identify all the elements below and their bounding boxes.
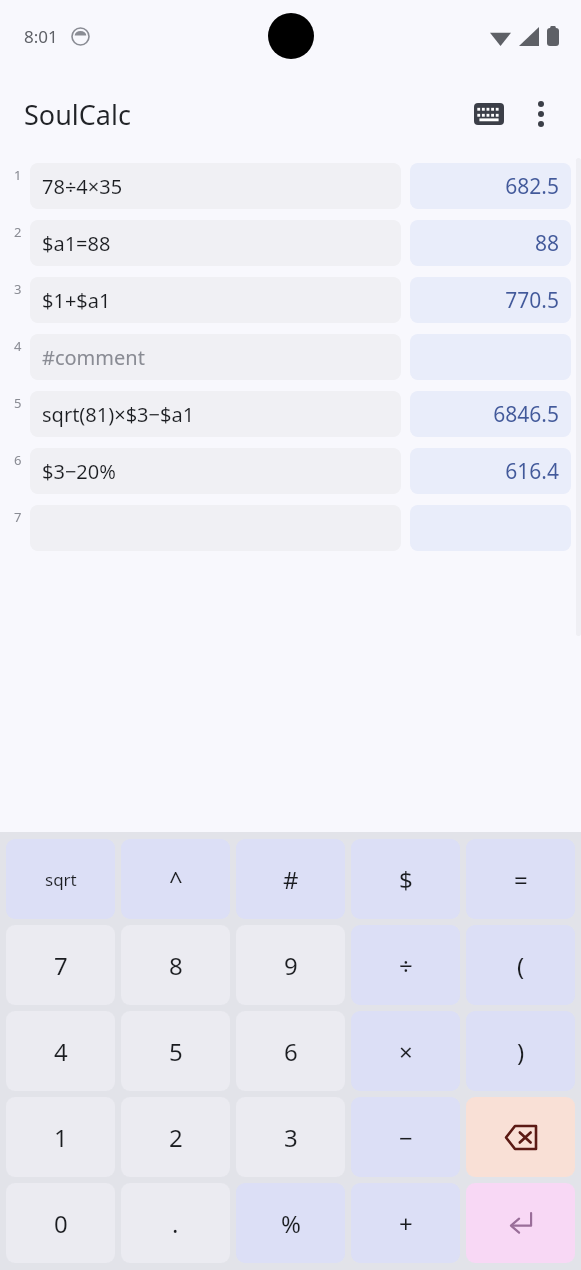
staticText: 1	[14, 166, 22, 184]
staticText: 7	[14, 508, 22, 526]
staticText: 8	[169, 949, 183, 982]
button[interactable]: More options	[515, 88, 567, 140]
button[interactable]: =	[466, 839, 575, 919]
button[interactable]: 4	[0, 334, 581, 380]
staticText: (	[517, 949, 525, 982]
staticText: %	[281, 1207, 301, 1240]
button[interactable]: 4	[6, 1011, 115, 1091]
staticText: 88	[534, 229, 559, 258]
staticText: $3−20%	[42, 458, 116, 485]
button[interactable]: Keyboard	[463, 88, 515, 140]
staticText: $a1=88	[42, 230, 111, 257]
staticText: ×	[399, 1035, 413, 1068]
button[interactable]: 1	[0, 163, 581, 209]
button[interactable]: .	[121, 1183, 230, 1263]
button[interactable]: 1	[6, 1097, 115, 1177]
button[interactable]: 7	[0, 505, 581, 551]
button[interactable]: #	[236, 839, 345, 919]
staticText: 0	[54, 1207, 68, 1240]
staticText: sqrt(81)×$3−$a1	[42, 401, 195, 428]
button[interactable]: 6	[236, 1011, 345, 1091]
staticText: 8:01	[24, 25, 58, 48]
staticText: 682.5	[505, 172, 559, 201]
button[interactable]: 3	[0, 277, 581, 323]
staticText: #comment	[42, 344, 145, 371]
button[interactable]: 0	[6, 1183, 115, 1263]
button[interactable]: %	[236, 1183, 345, 1263]
staticText: $	[399, 863, 413, 896]
staticText: +	[399, 1207, 413, 1240]
staticText: ÷	[399, 949, 413, 982]
button[interactable]: Backspace	[466, 1097, 575, 1177]
staticText: 2	[169, 1121, 183, 1154]
staticText: 9	[284, 949, 298, 982]
staticText: ^	[169, 863, 183, 896]
staticText: −	[399, 1121, 413, 1154]
button[interactable]: 6	[0, 448, 581, 494]
staticText: .	[172, 1207, 179, 1240]
staticText: 616.4	[505, 457, 559, 486]
button[interactable]: +	[351, 1183, 460, 1263]
button[interactable]: −	[351, 1097, 460, 1177]
button[interactable]: ×	[351, 1011, 460, 1091]
button[interactable]: 5	[0, 391, 581, 437]
button[interactable]: ^	[121, 839, 230, 919]
button[interactable]: sqrt	[6, 839, 115, 919]
button[interactable]: 2	[0, 220, 581, 266]
button[interactable]: )	[466, 1011, 575, 1091]
staticText: 6846.5	[493, 400, 559, 429]
button[interactable]: $	[351, 839, 460, 919]
staticText: $1+$a1	[42, 287, 111, 314]
staticText: 6	[14, 451, 22, 469]
button[interactable]: 8	[121, 925, 230, 1005]
staticText: 5	[169, 1035, 183, 1068]
staticText: =	[514, 863, 528, 896]
staticText: 4	[54, 1035, 68, 1068]
staticText: #	[283, 863, 299, 896]
staticText: 5	[14, 394, 22, 412]
button[interactable]: 9	[236, 925, 345, 1005]
staticText: SoulCalc	[24, 96, 131, 133]
staticText: 6	[284, 1035, 298, 1068]
staticText: )	[517, 1035, 525, 1068]
button[interactable]: 3	[236, 1097, 345, 1177]
button[interactable]: 5	[121, 1011, 230, 1091]
staticText: sqrt	[45, 868, 77, 891]
button[interactable]: (	[466, 925, 575, 1005]
staticText: 3	[284, 1121, 298, 1154]
staticText: 4	[14, 337, 22, 355]
staticText: 1	[54, 1121, 68, 1154]
staticText: 2	[14, 223, 22, 241]
button[interactable]: Enter	[466, 1183, 575, 1263]
staticText: 3	[14, 280, 22, 298]
button[interactable]: ÷	[351, 925, 460, 1005]
staticText: 7	[54, 949, 68, 982]
staticText: 78÷4×35	[42, 173, 123, 200]
button[interactable]: 7	[6, 925, 115, 1005]
staticText: 770.5	[505, 286, 559, 315]
button[interactable]: 2	[121, 1097, 230, 1177]
